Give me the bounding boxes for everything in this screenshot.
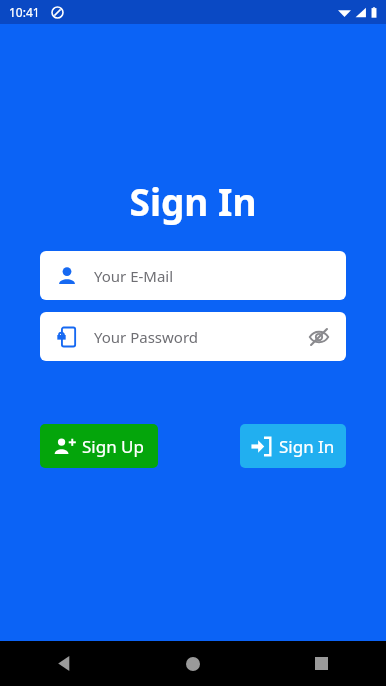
staticText: Sign In bbox=[279, 435, 335, 458]
staticText: 10:41 bbox=[9, 4, 40, 20]
staticText: Sign Up bbox=[82, 435, 144, 458]
button[interactable]: Recent apps bbox=[257, 641, 386, 686]
button[interactable]: Back bbox=[0, 641, 128, 686]
button[interactable]: Your E-Mail bbox=[40, 251, 346, 300]
button[interactable]: Sign Up bbox=[40, 424, 158, 468]
staticText: Your E-Mail bbox=[94, 266, 174, 286]
staticText: Sign In bbox=[0, 176, 386, 226]
button[interactable]: Your Password bbox=[40, 312, 346, 361]
button[interactable]: Home bbox=[128, 641, 257, 686]
staticText: Your Password bbox=[94, 327, 199, 347]
button[interactable]: Show password bbox=[306, 324, 332, 350]
button[interactable]: Sign In bbox=[240, 424, 346, 468]
